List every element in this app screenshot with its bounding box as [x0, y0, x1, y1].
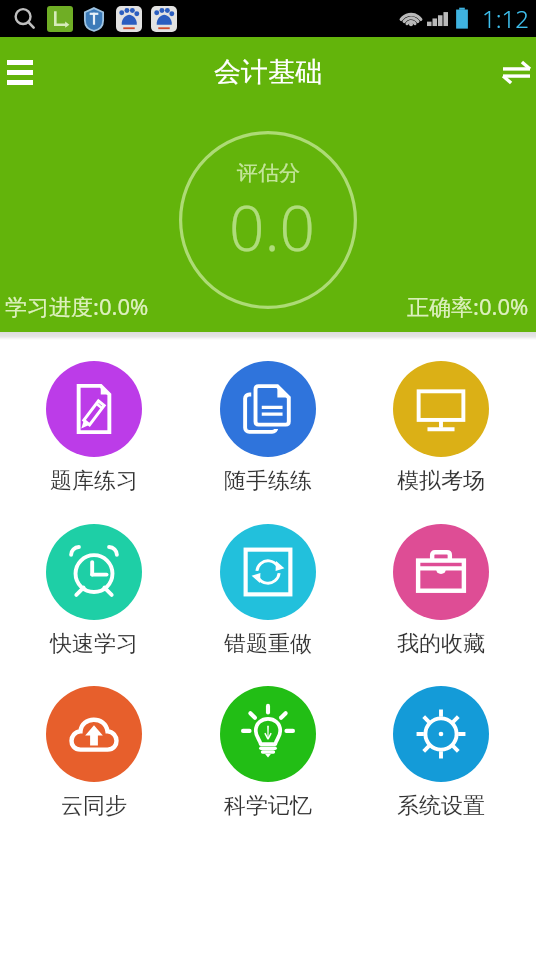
staticText: 评估分 — [237, 160, 300, 186]
staticText: 会计基础 — [214, 55, 322, 89]
button[interactable]: 我的收藏 — [369, 522, 513, 658]
button[interactable]: 云同步 — [22, 684, 166, 820]
button[interactable]: 错题重做 — [196, 522, 340, 658]
staticText: 学习进度:0.0% — [5, 291, 149, 321]
button[interactable]: Switch — [482, 45, 536, 99]
button[interactable]: 系统设置 — [369, 684, 513, 820]
staticText: 模拟考场 — [369, 467, 513, 495]
staticText: 云同步 — [22, 792, 166, 820]
button[interactable]: Menu — [0, 45, 54, 99]
staticText: 快速学习 — [22, 630, 166, 658]
staticText: 正确率:0.0% — [407, 291, 529, 321]
button[interactable]: 随手练练 — [196, 359, 340, 495]
button[interactable]: 科学记忆 — [196, 684, 340, 820]
button[interactable]: 快速学习 — [22, 522, 166, 658]
staticText: 1:12 — [482, 2, 529, 35]
staticText: 科学记忆 — [196, 792, 340, 820]
button[interactable]: 题库练习 — [22, 359, 166, 495]
staticText: 我的收藏 — [369, 630, 513, 658]
button[interactable]: 模拟考场 — [369, 359, 513, 495]
staticText: 系统设置 — [369, 792, 513, 820]
staticText: 0.0 — [229, 185, 315, 269]
staticText: 错题重做 — [196, 630, 340, 658]
staticText: 题库练习 — [22, 467, 166, 495]
staticText: 随手练练 — [196, 467, 340, 495]
